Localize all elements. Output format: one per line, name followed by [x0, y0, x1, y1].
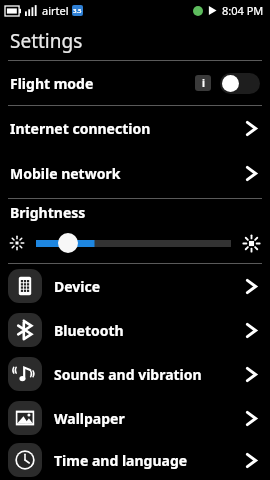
staticText: Sounds and vibration [54, 365, 245, 384]
button[interactable]: Mobile network [0, 151, 270, 196]
staticText: Internet connection [10, 119, 245, 138]
staticText: Flight mode [10, 74, 195, 93]
button[interactable]: Internet connection [0, 106, 270, 151]
staticText: 8:04 PM [222, 3, 264, 18]
button[interactable] [0, 225, 270, 261]
button[interactable]: Wallpaper [0, 396, 270, 440]
staticText: Mobile network [10, 164, 245, 183]
staticText: Bluetooth [54, 321, 245, 340]
button[interactable]: Flight mode toggle [220, 73, 260, 94]
button[interactable]: Sounds and vibration [0, 352, 270, 396]
button[interactable]: Flight mode [0, 61, 270, 105]
staticText: Time and language [54, 451, 245, 470]
staticText: airtel [42, 3, 69, 18]
staticText: 3.5 [73, 7, 82, 15]
button[interactable]: Info about flight mode [195, 75, 211, 91]
button[interactable]: Time and language [0, 440, 270, 480]
button[interactable]: Device [0, 264, 270, 308]
staticText: Device [54, 277, 245, 296]
staticText: Wallpaper [54, 409, 245, 428]
button[interactable]: Bluetooth [0, 308, 270, 352]
staticText: Brightness [10, 203, 86, 222]
staticText: i [202, 76, 205, 90]
staticText: Settings [10, 28, 83, 54]
